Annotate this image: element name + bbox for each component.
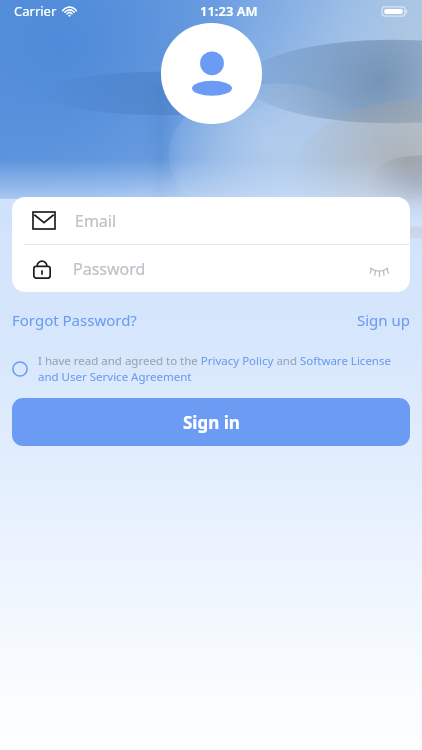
staticText: Carrier (14, 2, 57, 20)
button[interactable]: Sign up (357, 306, 410, 334)
staticText: I have read and agreed to the Privacy Po… (38, 353, 410, 384)
button[interactable]: I have read and agreed to the Privacy Po… (0, 353, 422, 384)
staticText: Sign in (183, 411, 240, 434)
staticText: 11:23 AM (200, 2, 258, 20)
button[interactable]: Forgot Password? (12, 306, 137, 334)
staticText: Forgot Password? (12, 310, 137, 330)
button[interactable]: Sign in (12, 398, 410, 446)
button[interactable]: Email (12, 197, 410, 244)
staticText: Password (73, 258, 146, 280)
staticText: Sign up (357, 310, 410, 330)
staticText: Email (75, 210, 117, 232)
button[interactable]: Password (12, 245, 410, 292)
button[interactable]: Show password (366, 259, 392, 279)
